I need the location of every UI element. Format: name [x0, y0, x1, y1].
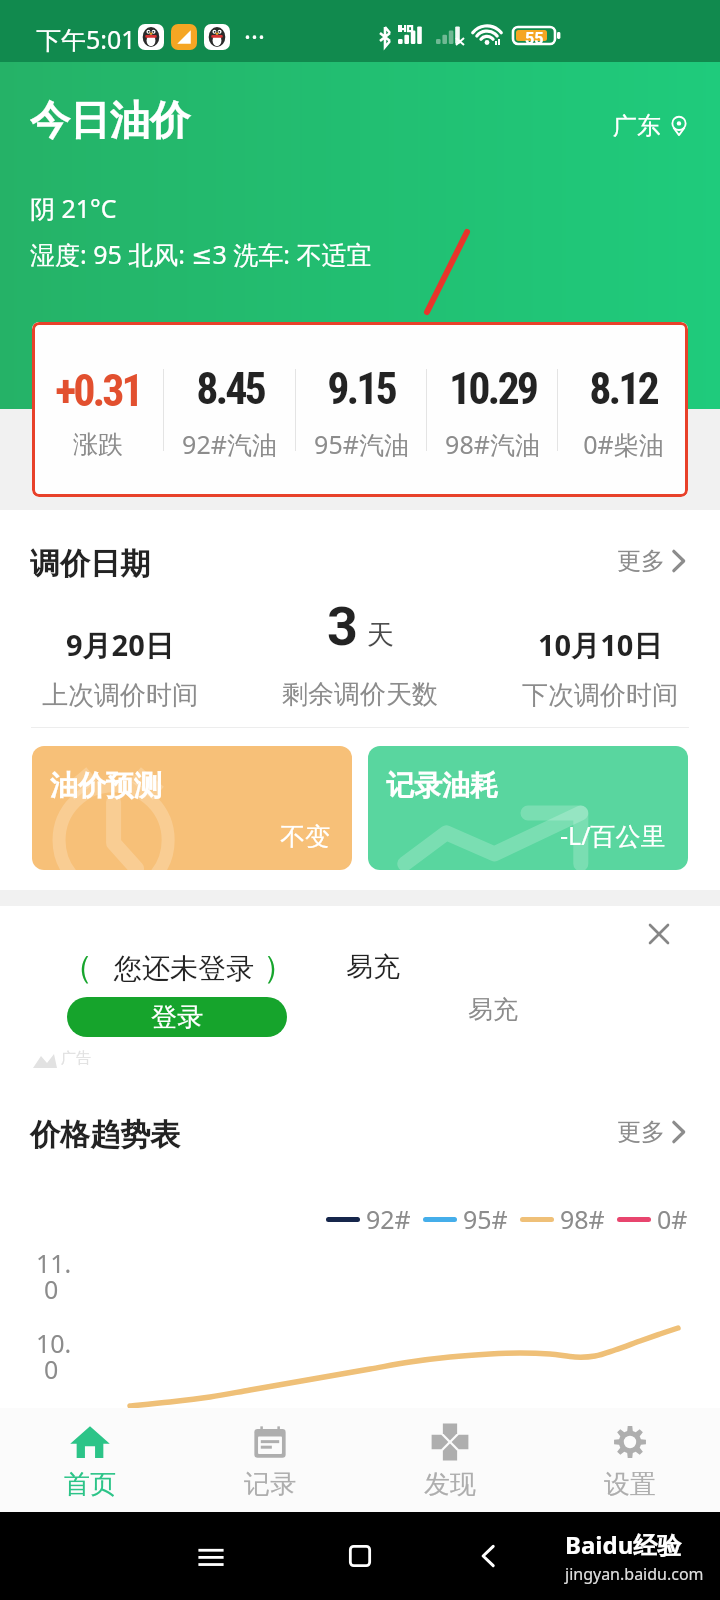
staticText: 登录	[151, 1001, 203, 1034]
staticText: 更多	[617, 546, 665, 576]
staticText: 98#汽油	[445, 427, 540, 461]
button[interactable]: 首页	[0, 1408, 180, 1512]
button[interactable]: 记录油耗	[368, 746, 688, 870]
staticText: Baidu经验	[565, 1528, 682, 1561]
button[interactable]: 记录	[180, 1408, 360, 1512]
button[interactable]: 最近任务	[190, 1535, 232, 1577]
staticText: 11.	[36, 1246, 72, 1280]
staticText: 剩余调价天数	[282, 678, 438, 711]
staticText: 95#汽油	[314, 427, 409, 461]
button[interactable]: 10.29	[427, 358, 557, 461]
staticText: 下午5:01	[36, 22, 136, 56]
button[interactable]: 发现	[360, 1408, 540, 1512]
staticText: 10.29	[449, 363, 536, 415]
button[interactable]: 3	[240, 606, 480, 716]
staticText: 9月20日	[66, 625, 174, 665]
staticText: jingyan.baidu.com	[565, 1563, 704, 1585]
staticText: 广东	[613, 111, 661, 141]
staticText: 更多	[617, 1117, 665, 1147]
button[interactable]: 油价预测	[32, 746, 352, 870]
staticText: 价格趋势表	[30, 1116, 180, 1154]
button[interactable]: 返回	[468, 1535, 510, 1577]
staticText: -L/百公里	[560, 818, 666, 852]
staticText: 98#	[560, 1202, 605, 1236]
button[interactable]: （	[0, 906, 720, 1090]
staticText: （	[61, 947, 93, 987]
button[interactable]: 8.45	[164, 358, 295, 461]
staticText: 湿度: 95 北风: ≤3 洗车: 不适宜	[30, 237, 372, 271]
staticText: 您还未登录	[114, 951, 254, 986]
staticText: 易充	[468, 994, 518, 1025]
staticText: 92#汽油	[182, 427, 277, 461]
button[interactable]: 8.12	[558, 358, 688, 461]
staticText: 记录油耗	[386, 768, 498, 803]
staticText: 上次调价时间	[42, 679, 198, 712]
staticText: 下次调价时间	[522, 679, 678, 712]
staticText: 调价日期	[30, 545, 150, 583]
staticText: 9.15	[327, 363, 395, 415]
staticText: ···	[244, 18, 265, 53]
staticText: 记录	[244, 1468, 296, 1501]
staticText: 不变	[280, 821, 330, 852]
staticText: 设置	[604, 1468, 656, 1501]
staticText: 易充	[346, 950, 400, 984]
staticText: 3	[327, 595, 358, 658]
staticText: 天	[367, 618, 394, 652]
staticText: 8.12	[589, 363, 657, 415]
staticText: +0.31	[55, 365, 141, 417]
staticText: 首页	[64, 1468, 116, 1501]
staticText: 0#柴油	[583, 427, 664, 461]
staticText: 92#	[366, 1202, 411, 1236]
button[interactable]: 10月10日	[480, 606, 720, 712]
staticText: 8.45	[196, 363, 264, 415]
staticText: 发现	[424, 1468, 476, 1501]
button[interactable]: 登录	[67, 997, 287, 1037]
staticText: 95#	[463, 1202, 508, 1236]
staticText: ）	[263, 947, 295, 987]
button[interactable]: 设置	[540, 1408, 720, 1512]
button[interactable]: +0.31	[32, 322, 688, 497]
button[interactable]: 关闭广告	[641, 916, 677, 952]
staticText: 10.	[36, 1326, 72, 1360]
staticText: 阴 21°C	[30, 191, 117, 225]
button[interactable]: 9.15	[296, 358, 426, 461]
staticText: 油价预测	[50, 768, 162, 803]
staticText: 0	[44, 1272, 59, 1306]
button[interactable]: 主屏幕	[339, 1535, 381, 1577]
staticText: 涨跌	[73, 429, 123, 460]
staticText: 55	[525, 29, 544, 48]
staticText: 0#	[657, 1202, 688, 1236]
button[interactable]: +0.31	[32, 360, 163, 460]
button[interactable]: 更多	[609, 543, 685, 585]
button[interactable]: 更多	[609, 1114, 685, 1156]
button[interactable]: 广东	[609, 105, 696, 147]
staticText: 0	[44, 1352, 59, 1386]
staticText: 今日油价	[30, 95, 190, 145]
staticText: 广告	[61, 1049, 91, 1068]
staticText: 10月10日	[538, 625, 663, 665]
button[interactable]: 9月20日	[0, 606, 240, 712]
